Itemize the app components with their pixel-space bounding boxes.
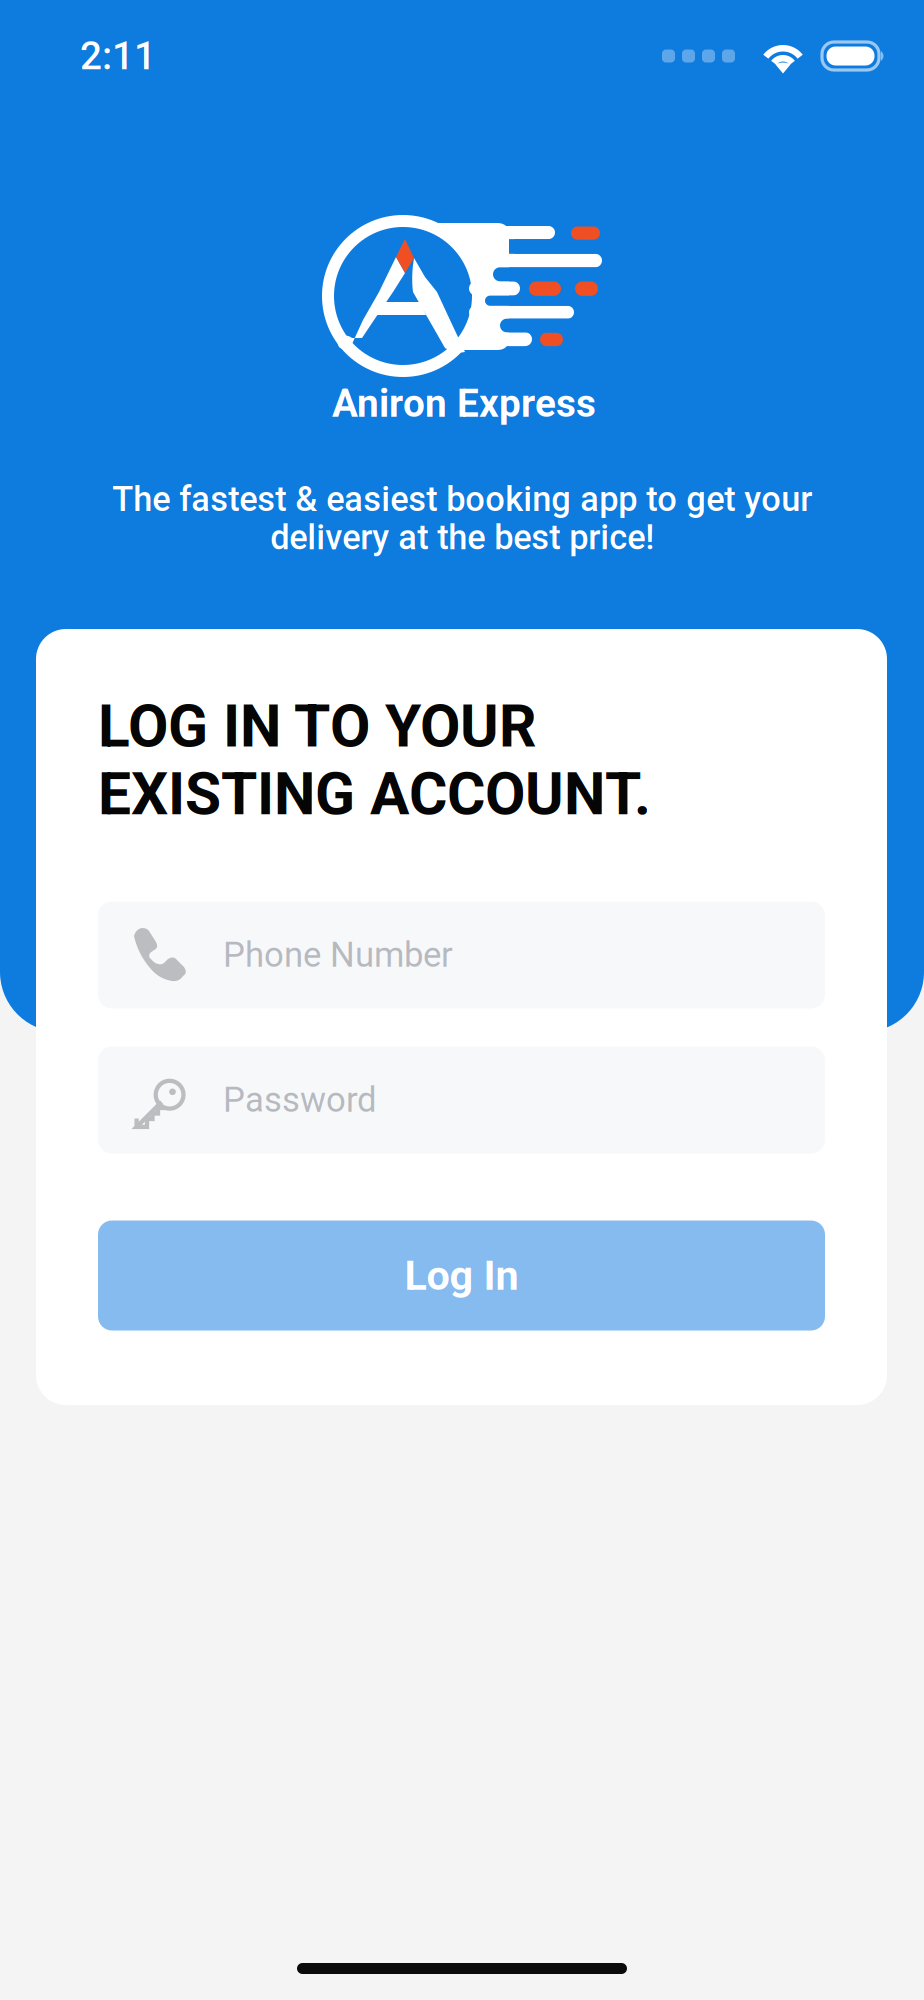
staticText: Phone Number <box>223 935 453 975</box>
staticText: LOG IN TO YOUR EXISTING ACCOUNT. <box>98 692 651 828</box>
button[interactable]: Log In <box>98 1220 825 1330</box>
staticText: The fastest & easiest booking app to get… <box>112 479 812 558</box>
staticText: Log In <box>404 1251 518 1300</box>
staticText: Password <box>223 1080 377 1120</box>
button[interactable]: Password <box>98 1046 825 1153</box>
button[interactable]: Phone Number <box>98 901 825 1008</box>
staticText: Aniron Express <box>332 381 596 426</box>
staticText: 2:11 <box>80 33 156 79</box>
